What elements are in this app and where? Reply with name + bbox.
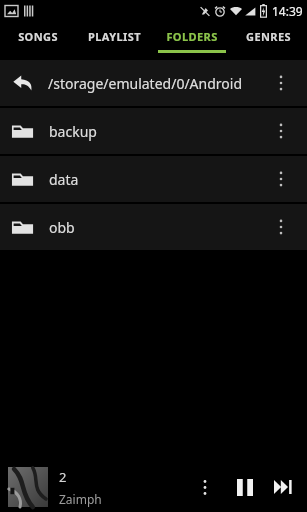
button[interactable]: SONGS xyxy=(0,22,76,54)
button[interactable]: More options xyxy=(269,159,293,199)
staticText: GENRES xyxy=(246,29,291,44)
other: Up one level xyxy=(12,72,34,94)
staticText: 14:39 xyxy=(272,3,303,19)
button[interactable]: Now playing artwork xyxy=(8,467,48,507)
button[interactable]: backup xyxy=(0,108,307,154)
button[interactable]: Player options xyxy=(191,465,219,509)
staticText: backup xyxy=(49,122,269,141)
button[interactable]: PLAYLIST xyxy=(76,22,153,54)
button[interactable]: obb xyxy=(0,204,307,250)
button[interactable]: GENRES xyxy=(230,22,307,54)
staticText: obb xyxy=(49,218,269,237)
staticText: 2 xyxy=(59,468,67,486)
button[interactable]: Next track xyxy=(267,465,299,509)
staticText: /storage/emulated/0/Android xyxy=(48,74,269,93)
staticText: Zaimph xyxy=(59,491,102,507)
button[interactable]: More options xyxy=(269,111,293,151)
button[interactable]: Up one level xyxy=(0,60,307,106)
staticText: PLAYLIST xyxy=(88,29,141,44)
button[interactable]: More options xyxy=(269,207,293,247)
button[interactable]: More options xyxy=(269,63,293,103)
staticText: data xyxy=(49,170,269,189)
staticText: SONGS xyxy=(18,29,58,44)
button[interactable]: data xyxy=(0,156,307,202)
button[interactable]: 2 xyxy=(59,468,191,507)
staticText: FOLDERS xyxy=(166,29,218,44)
button[interactable]: FOLDERS xyxy=(153,22,230,54)
button[interactable]: Pause xyxy=(229,465,261,509)
